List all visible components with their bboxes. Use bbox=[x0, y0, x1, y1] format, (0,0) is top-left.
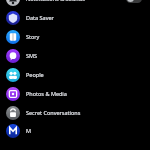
staticText: Photos & Media bbox=[26, 90, 142, 97]
button[interactable]: SMS bbox=[0, 46, 150, 65]
staticText: Story bbox=[26, 33, 142, 40]
button[interactable]: M bbox=[0, 122, 150, 139]
staticText: Data Saver bbox=[26, 14, 142, 21]
staticText: Secret Conversations bbox=[26, 109, 142, 116]
button[interactable]: Data Saver bbox=[0, 8, 150, 27]
button[interactable]: Notifications & Sounds bbox=[0, 0, 150, 8]
staticText: Notifications & Sounds bbox=[26, 0, 126, 2]
button[interactable]: Photos & Media bbox=[0, 84, 150, 103]
button[interactable]: Toggle bbox=[126, 0, 142, 3]
button[interactable]: People bbox=[0, 65, 150, 84]
staticText: People bbox=[26, 71, 142, 78]
staticText: M bbox=[26, 127, 142, 134]
staticText: SMS bbox=[26, 52, 142, 59]
button[interactable]: Story bbox=[0, 27, 150, 46]
button[interactable]: Secret Conversations bbox=[0, 103, 150, 122]
